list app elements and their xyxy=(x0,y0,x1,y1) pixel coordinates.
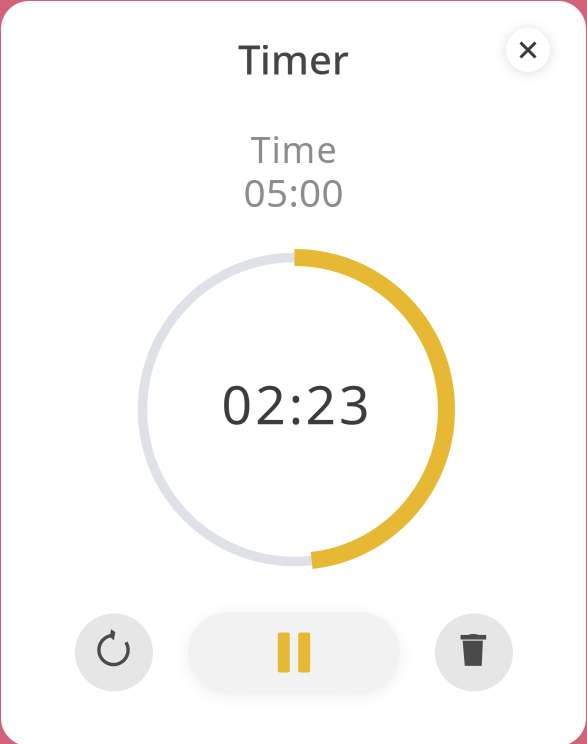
button[interactable]: Delete xyxy=(435,613,513,691)
staticText: 05:00 xyxy=(243,166,343,218)
staticText: Timer xyxy=(238,32,349,85)
button[interactable]: Reset xyxy=(75,613,153,691)
button[interactable]: Close xyxy=(506,28,550,72)
staticText: 02:23 xyxy=(222,368,370,439)
button[interactable]: Pause xyxy=(188,612,400,693)
staticText: Time xyxy=(250,125,336,173)
